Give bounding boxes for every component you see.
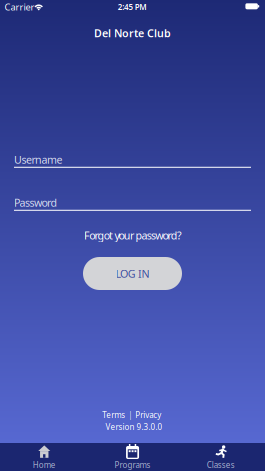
staticText: Password: [14, 196, 57, 210]
staticText: |: [128, 410, 132, 420]
staticText: Carrier: [4, 1, 34, 13]
button[interactable]: Username: [14, 153, 251, 168]
staticText: LOG IN: [115, 266, 149, 281]
button[interactable]: LOG IN: [83, 257, 182, 290]
staticText: Classes: [207, 459, 235, 470]
staticText: 2:45 PM: [118, 1, 146, 12]
staticText: Forgot your password?: [84, 228, 182, 242]
button[interactable]: Forgot your password?: [84, 228, 182, 242]
staticText: Privacy: [135, 410, 161, 420]
staticText: Home: [33, 459, 56, 470]
button[interactable]: Terms: [102, 410, 125, 420]
staticText: Version 9.3.0.0: [105, 422, 162, 432]
button[interactable]: Privacy: [135, 410, 161, 420]
button[interactable]: Programs: [88, 443, 177, 471]
button[interactable]: Password: [14, 196, 251, 211]
staticText: Del Norte Club: [94, 26, 171, 40]
button[interactable]: Classes: [177, 443, 265, 471]
button[interactable]: Home: [0, 443, 88, 471]
staticText: Username: [14, 153, 62, 167]
staticText: Programs: [115, 459, 151, 470]
staticText: Terms: [102, 410, 125, 420]
